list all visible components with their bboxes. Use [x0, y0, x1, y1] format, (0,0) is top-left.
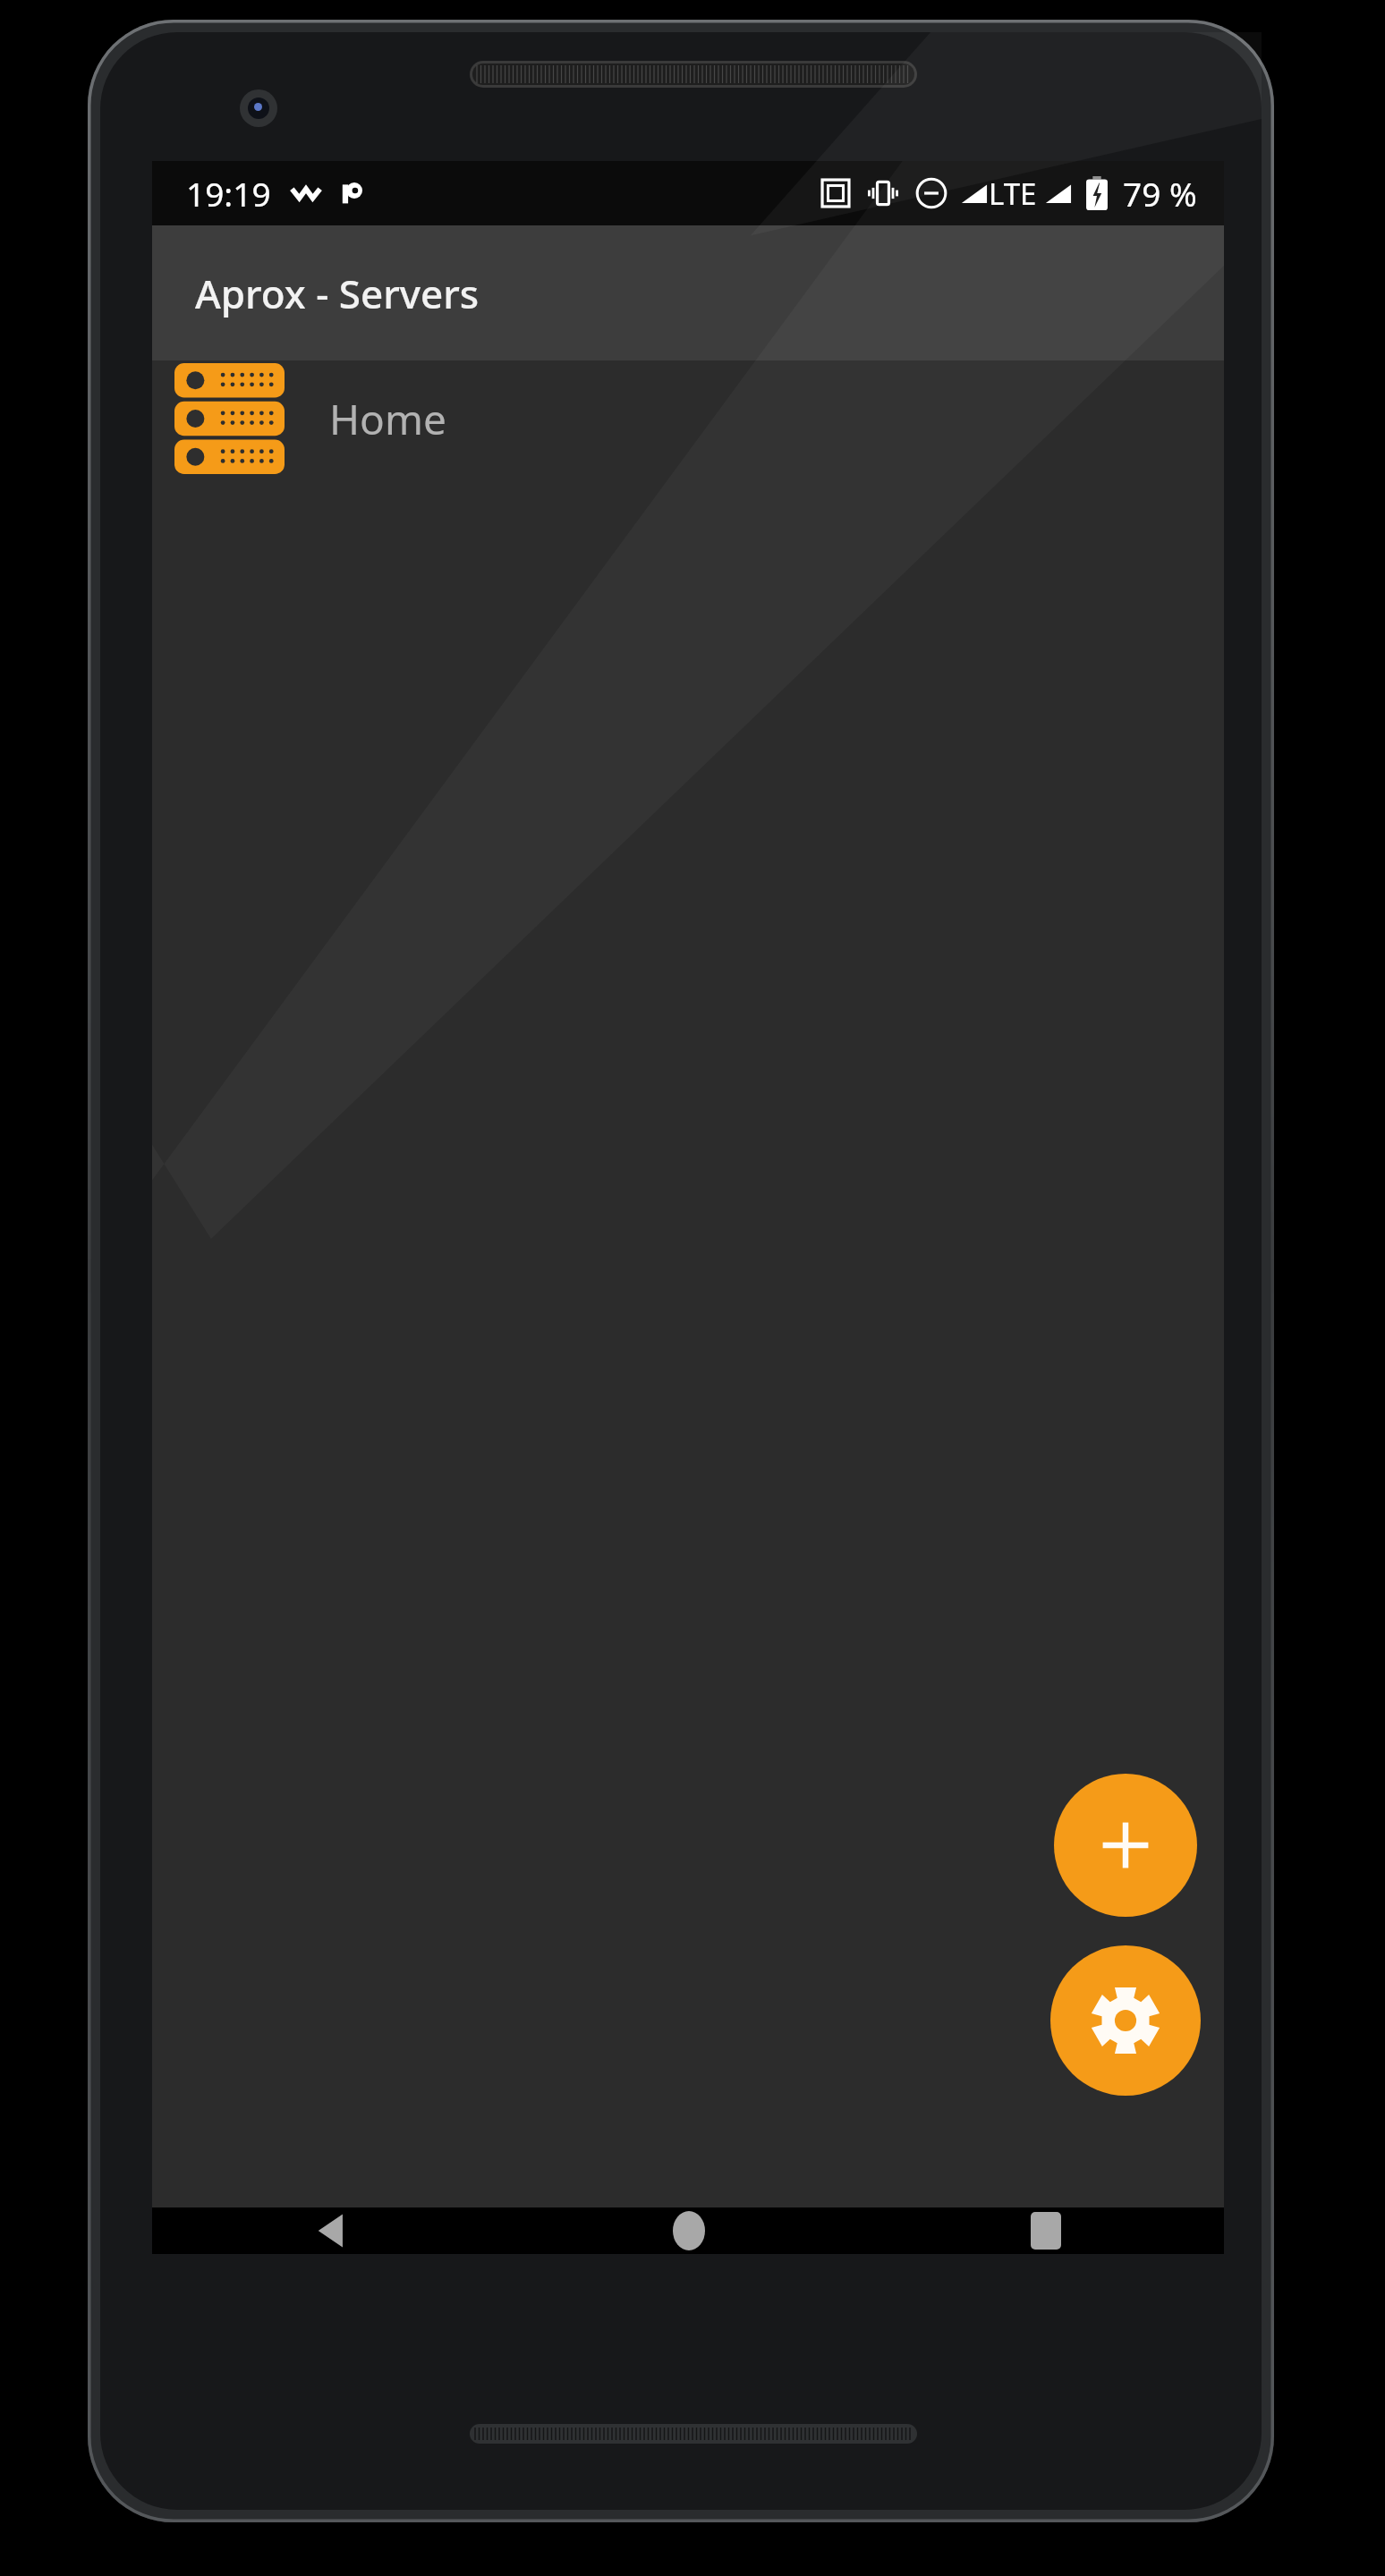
staticText: 19:19 [186, 171, 271, 216]
staticText: LTE [989, 174, 1037, 214]
staticText: 79 % [1123, 171, 1197, 216]
button[interactable]: Recent apps [867, 2207, 1224, 2254]
button[interactable]: Home [152, 360, 1224, 477]
staticText: Aprox - Servers [195, 267, 480, 320]
button[interactable]: Back [152, 2207, 510, 2254]
staticText: Home [329, 391, 446, 447]
button[interactable]: Settings [1050, 1945, 1201, 2096]
button[interactable]: Home [510, 2207, 867, 2254]
button[interactable]: Add server [1054, 1774, 1197, 1917]
